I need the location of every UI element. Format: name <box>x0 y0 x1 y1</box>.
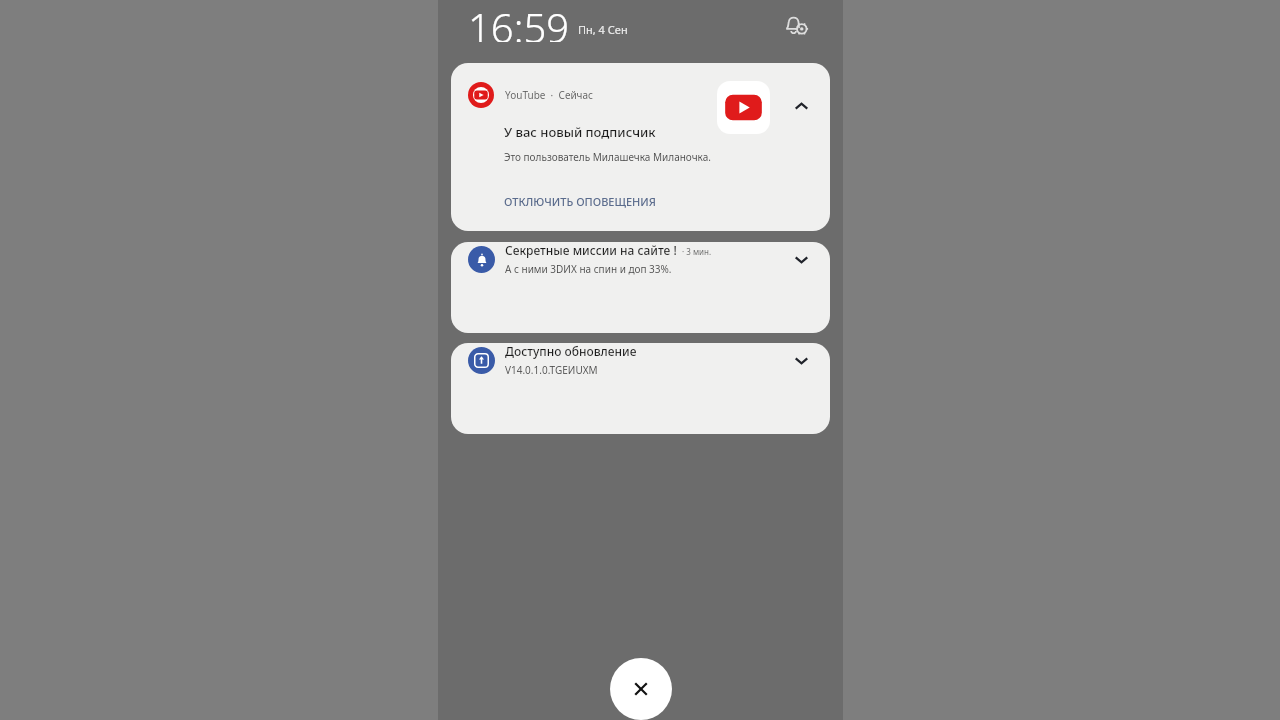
staticText: А с ними 3DИX на спин и доп 33%. <box>505 262 672 276</box>
button[interactable]: Close <box>610 658 672 720</box>
staticText: Доступно обновление <box>505 343 637 359</box>
staticText: 16:59 <box>468 0 570 42</box>
staticText: Секретные миссии на сайте ! <box>505 242 677 258</box>
button[interactable]: YouTube · Сейчас <box>451 63 830 231</box>
staticText: Пн, 4 Сен <box>578 22 628 37</box>
staticText: V14.0.1.0.TGEИUXM <box>505 363 598 377</box>
staticText: ОТКЛЮЧИТЬ ОПОВЕЩЕНИЯ <box>504 194 656 209</box>
button[interactable]: Notification settings <box>779 9 813 43</box>
button[interactable] <box>717 81 770 134</box>
staticText: · 3 мин. <box>680 246 712 257</box>
staticText: YouTube · Сейчас <box>505 88 593 102</box>
staticText: Это пользователь Милашечка Миланочка. <box>504 150 711 164</box>
button[interactable]: Секретные миссии на сайте ! <box>451 242 830 333</box>
staticText: У вас новый подписчик <box>504 123 656 141</box>
button[interactable]: Expand <box>786 244 816 274</box>
button[interactable]: Expand <box>786 345 816 375</box>
button[interactable]: ОТКЛЮЧИТЬ ОПОВЕЩЕНИЯ <box>497 189 663 214</box>
button[interactable]: Collapse <box>786 91 816 121</box>
button[interactable]: Доступно обновление <box>451 343 830 434</box>
